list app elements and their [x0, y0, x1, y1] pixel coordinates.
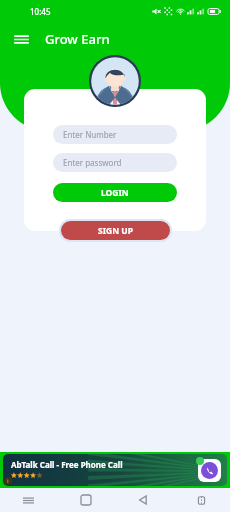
- staticText: SIGN UP: [98, 225, 133, 237]
- button[interactable]: SIGN UP: [61, 221, 170, 240]
- button[interactable]: Back: [114, 488, 172, 512]
- staticText: Grow Earn: [45, 30, 110, 48]
- staticText: LOGIN: [101, 187, 129, 199]
- staticText: Enter password: [63, 157, 122, 168]
- staticText: 10:45: [30, 6, 51, 17]
- button[interactable]: Split screen: [172, 488, 230, 512]
- button[interactable]: Open navigation menu: [7, 25, 35, 53]
- staticText: Enter Number: [63, 129, 117, 140]
- button[interactable]: LOGIN: [53, 183, 177, 202]
- button[interactable]: Recent apps: [0, 488, 57, 512]
- staticText: AbTalk Call - Free Phone Call: [11, 459, 123, 470]
- button[interactable]: Home: [57, 488, 114, 512]
- button[interactable]: Enter Number: [53, 125, 177, 144]
- button[interactable]: Advertisement: AbTalk Call - Free Phone …: [3, 454, 227, 486]
- button[interactable]: Enter password: [53, 153, 177, 172]
- staticText: i: [7, 478, 9, 485]
